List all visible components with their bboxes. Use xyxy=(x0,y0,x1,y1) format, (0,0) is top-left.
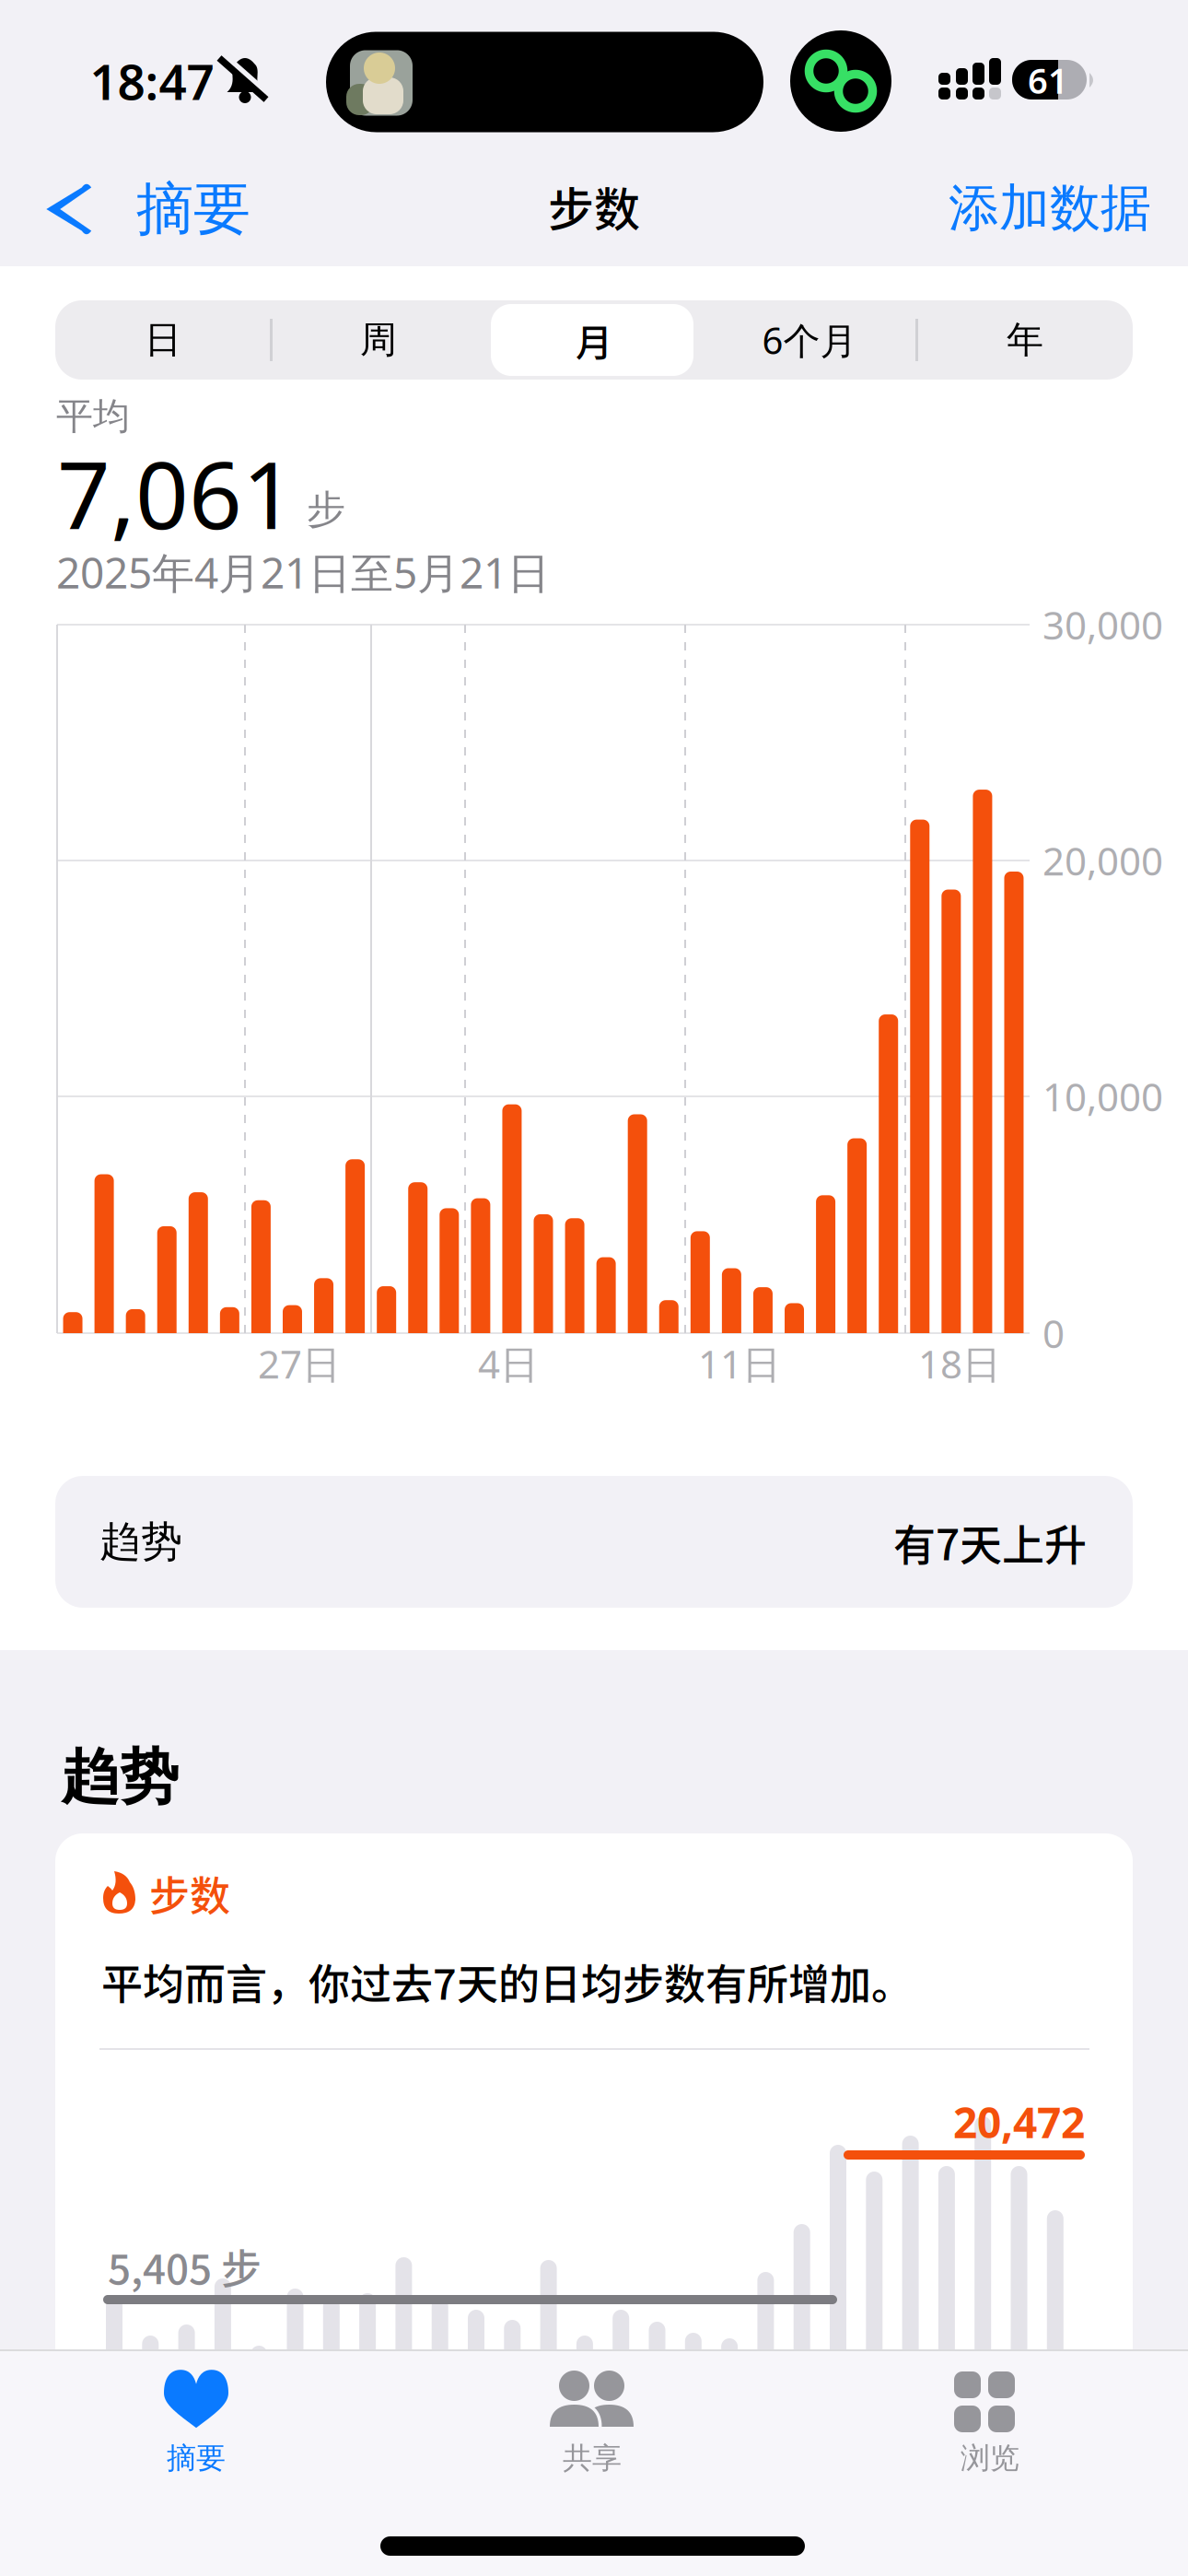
staticText: 浏览 xyxy=(961,2439,1019,2477)
staticText: 11日 xyxy=(698,1337,781,1390)
staticText: 有7天上升 xyxy=(893,1511,1087,1573)
staticText: 18日 xyxy=(918,1337,1001,1390)
button[interactable]: 日 xyxy=(57,300,269,380)
staticText: 2025年4月21日至5月21日 xyxy=(56,543,550,601)
button[interactable]: 趋势 xyxy=(55,1476,1133,1608)
staticText: 步数 xyxy=(548,173,640,240)
staticText: 月 xyxy=(576,313,612,367)
staticText: 步数 xyxy=(149,1864,230,1923)
staticText: 0 xyxy=(1042,1307,1065,1359)
button[interactable]: 月 xyxy=(488,300,700,380)
staticText: 30,000 xyxy=(1042,598,1163,651)
staticText: 18:47 xyxy=(90,48,214,114)
button[interactable]: 返回摘要 xyxy=(37,164,258,252)
button[interactable]: 添加数据 xyxy=(875,164,1151,252)
staticText: 20,000 xyxy=(1042,834,1163,887)
staticText: 平均 xyxy=(56,393,130,440)
staticText: 日 xyxy=(145,317,181,363)
button[interactable]: 步数趋势卡片 xyxy=(55,1833,1133,2405)
staticText: 添加数据 xyxy=(949,176,1151,240)
staticText: 6个月 xyxy=(762,315,857,365)
button[interactable]: 年 xyxy=(919,300,1131,380)
staticText: 摘要 xyxy=(167,2439,226,2477)
staticText: 共享 xyxy=(563,2439,622,2477)
button[interactable]: 6个月 xyxy=(704,300,915,380)
button[interactable]: 周 xyxy=(273,300,484,380)
staticText: 5,405 步 xyxy=(108,2237,262,2296)
staticText: 趋势 xyxy=(61,1740,179,1814)
staticText: 趋势 xyxy=(99,1516,182,1568)
staticText: 10,000 xyxy=(1042,1070,1163,1123)
staticText: 61 xyxy=(1028,56,1068,104)
staticText: 周 xyxy=(360,317,397,363)
button[interactable]: 摘要 xyxy=(44,2349,348,2506)
button[interactable]: 共享 xyxy=(440,2349,744,2506)
staticText: 平均而言，你过去7天的日均步数有所增加。 xyxy=(101,1952,913,2012)
staticText: 摘要 xyxy=(136,173,250,245)
staticText: 20,472 xyxy=(953,2093,1085,2151)
staticText: 27日 xyxy=(258,1337,341,1390)
staticText: 7,061 xyxy=(57,430,296,556)
staticText: 步 xyxy=(307,485,345,534)
staticText: 4日 xyxy=(478,1337,539,1390)
staticText: 年 xyxy=(1007,317,1043,363)
button[interactable]: 浏览 xyxy=(838,2349,1142,2506)
